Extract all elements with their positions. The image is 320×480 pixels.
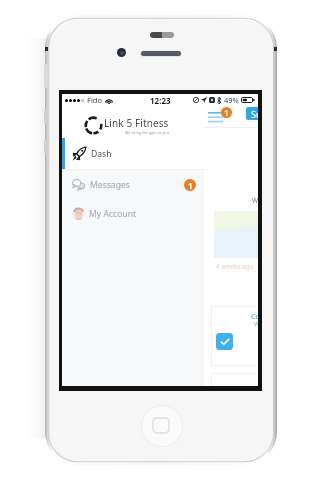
staticText: Fido	[87, 95, 102, 105]
staticText: 4 weeks ago	[216, 262, 254, 271]
staticText: My Account	[89, 208, 137, 220]
staticText: 1	[224, 107, 229, 118]
staticText: We bring the gym to you	[125, 130, 169, 135]
staticText: 1	[188, 180, 193, 191]
button[interactable]: Open navigation menu	[202, 106, 230, 127]
staticText: Wo	[252, 196, 258, 205]
staticText: Dash	[91, 148, 112, 160]
button[interactable]: Mark workout complete	[216, 333, 233, 350]
button[interactable]: My Account	[62, 199, 204, 228]
staticText: Co	[251, 312, 258, 322]
staticText: 12:23	[150, 95, 171, 106]
staticText: Sup	[251, 108, 258, 120]
button[interactable]: Messages	[62, 170, 204, 199]
staticText: W	[254, 320, 258, 328]
staticText: 49%	[224, 95, 239, 105]
button[interactable]: Sup	[246, 107, 258, 120]
staticText: Messages	[90, 179, 130, 191]
staticText: Link 5 Fitness	[104, 116, 169, 130]
button[interactable]: Dash	[62, 138, 204, 169]
